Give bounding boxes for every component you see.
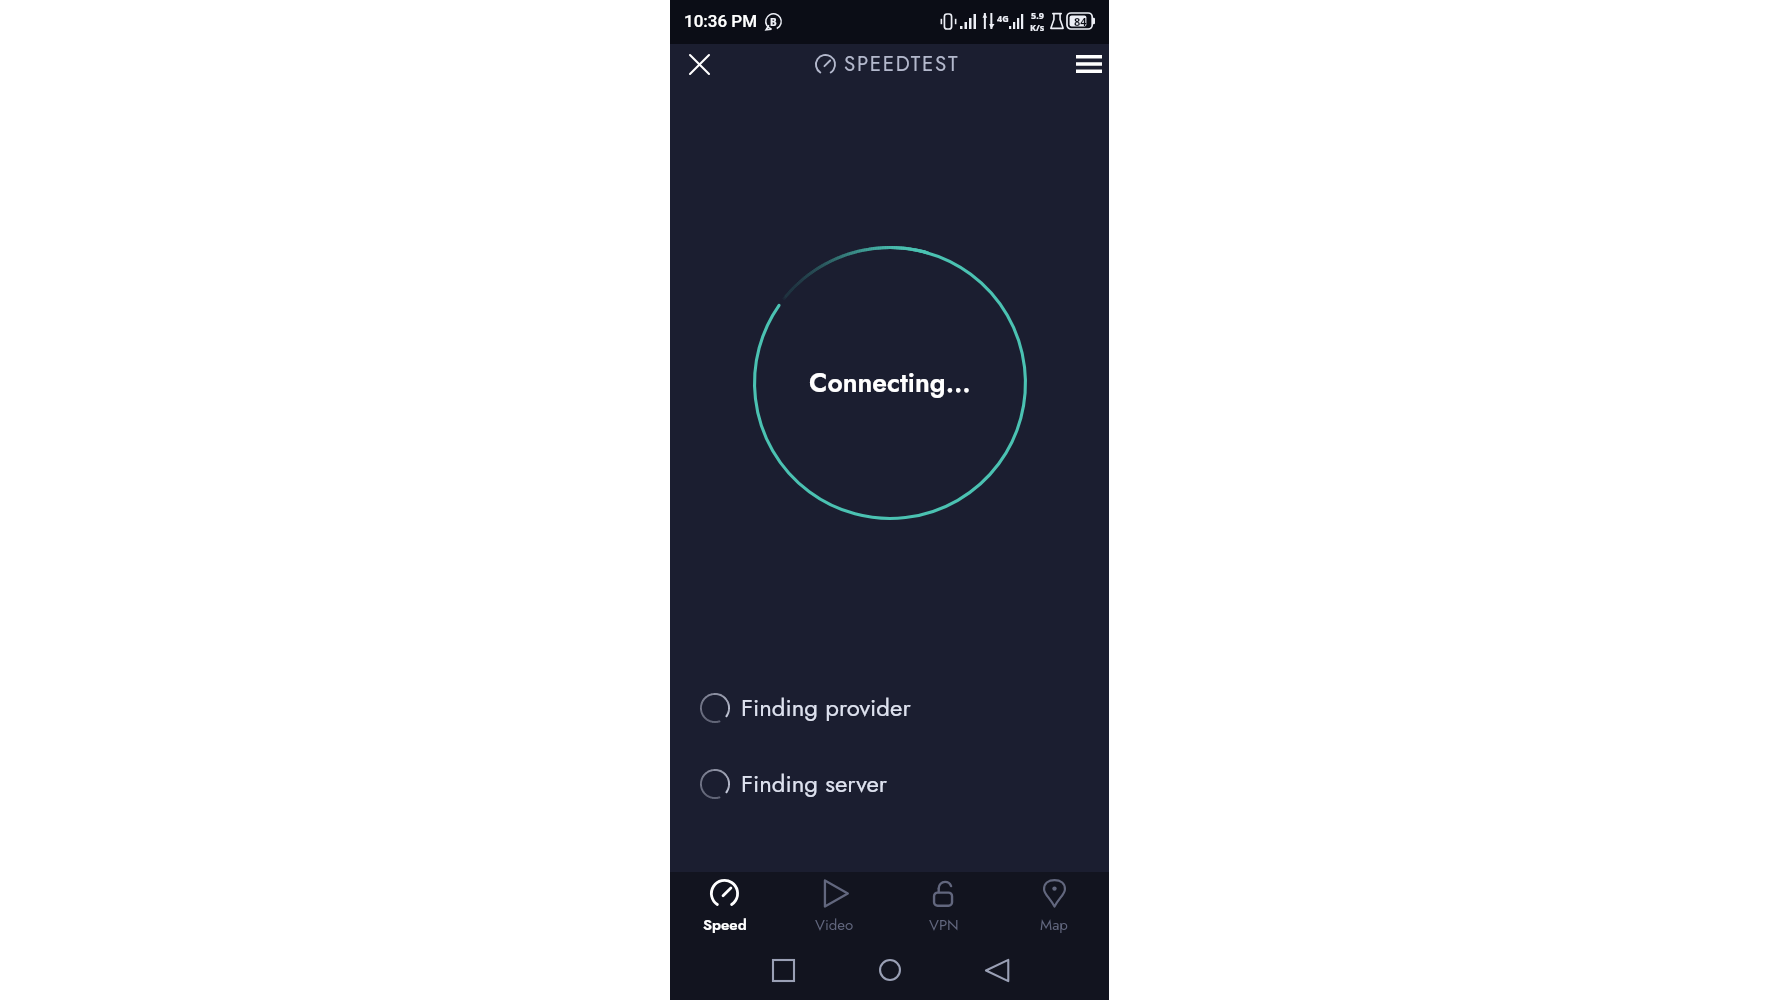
button[interactable]: Speed [670, 872, 779, 946]
staticText: 10:36 PM [684, 11, 758, 31]
staticText: 84 [1074, 14, 1087, 29]
staticText: Connecting... [809, 364, 971, 402]
staticText: Finding server [741, 766, 888, 801]
button[interactable]: Home [868, 948, 912, 992]
staticText: 4G [997, 12, 1009, 24]
staticText: Video [815, 914, 854, 936]
staticText: 5.9 [1031, 9, 1044, 21]
button[interactable]: Close [680, 45, 718, 83]
staticText: K/s [1030, 21, 1045, 33]
staticText: Speed [703, 914, 747, 936]
staticText: SPEEDTEST [844, 49, 960, 79]
button[interactable]: Recents [761, 948, 805, 992]
button[interactable]: Finding provider [700, 690, 911, 725]
button[interactable]: Finding server [700, 766, 888, 801]
button[interactable]: Menu [1070, 45, 1108, 83]
button[interactable]: Map [999, 872, 1109, 946]
button[interactable]: Back [975, 948, 1019, 992]
staticText: B [770, 15, 777, 29]
button[interactable]: Video [779, 872, 889, 946]
staticText: Map [1040, 914, 1068, 936]
staticText: VPN [929, 914, 959, 936]
button[interactable]: VPN [889, 872, 999, 946]
staticText: Finding provider [741, 690, 911, 725]
